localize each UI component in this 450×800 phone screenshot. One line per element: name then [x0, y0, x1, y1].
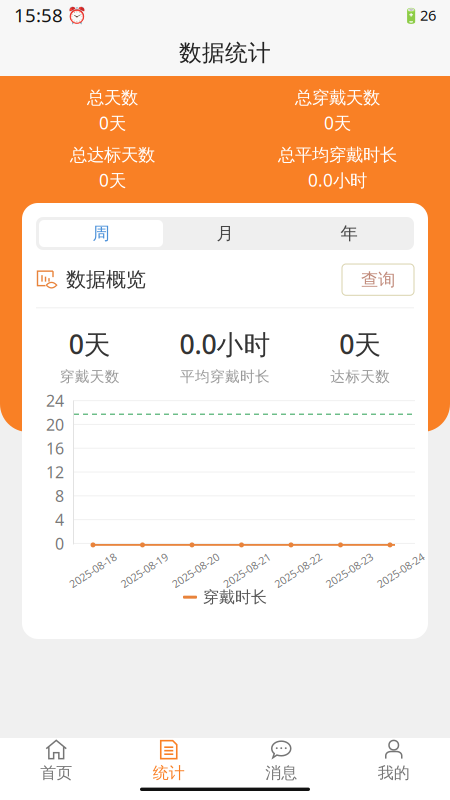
staticText: 数据统计 [179, 39, 271, 67]
staticText: 2025-08-22 [271, 563, 325, 577]
staticText: 年 [340, 223, 357, 244]
staticText: 0天 [339, 326, 381, 362]
button[interactable]: 消息 [225, 731, 337, 787]
staticText: 平均穿戴时长 [180, 368, 270, 386]
staticText: 统计 [153, 763, 185, 783]
staticText: 0.0小时 [308, 169, 367, 192]
button[interactable]: 周 [39, 220, 163, 247]
staticText: 24 [46, 390, 64, 411]
staticText: 周 [92, 223, 109, 244]
staticText: 数据概览 [66, 267, 146, 292]
staticText: 2025-08-20 [169, 563, 223, 577]
staticText: 查询 [361, 269, 395, 290]
staticText: 8 [55, 485, 64, 506]
staticText: 0.0小时 [179, 326, 270, 362]
staticText: 16 [46, 438, 64, 459]
staticText: 穿戴天数 [60, 368, 120, 386]
button[interactable]: 年 [287, 220, 411, 247]
staticText: 首页 [40, 763, 72, 783]
staticText: 0天 [99, 169, 126, 192]
staticText: 0 [55, 533, 64, 554]
staticText: 20 [46, 414, 64, 435]
staticText: 穿戴时长 [203, 587, 267, 607]
staticText: 2025-08-23 [322, 563, 376, 577]
staticText: 12 [46, 461, 64, 483]
staticText: 2025-08-24 [374, 563, 428, 577]
staticText: 消息 [265, 763, 297, 783]
staticText: 我的 [378, 763, 410, 783]
staticText: 总达标天数 [70, 144, 155, 166]
staticText: 0天 [69, 326, 111, 362]
button[interactable]: 我的 [337, 731, 450, 787]
staticText: ⏰ [63, 4, 87, 26]
staticText: 总穿戴天数 [295, 87, 380, 108]
staticText: 2025-08-21 [220, 563, 274, 577]
button[interactable]: 查询 [342, 264, 414, 295]
staticText: 达标天数 [330, 368, 390, 386]
button[interactable]: 月 [163, 220, 287, 247]
staticText: 🔋26 [402, 5, 436, 25]
staticText: 0天 [324, 111, 351, 134]
staticText: 月 [216, 223, 233, 244]
button[interactable]: 首页 [0, 731, 112, 787]
staticText: 0天 [99, 111, 126, 134]
staticText: 2025-08-18 [66, 563, 120, 577]
button[interactable]: 统计 [112, 731, 225, 787]
staticText: 总天数 [87, 87, 138, 108]
staticText: 2025-08-19 [117, 563, 171, 577]
staticText: 总平均穿戴时长 [278, 144, 397, 166]
staticText: 15:58 [14, 3, 63, 27]
staticText: 4 [55, 509, 64, 530]
